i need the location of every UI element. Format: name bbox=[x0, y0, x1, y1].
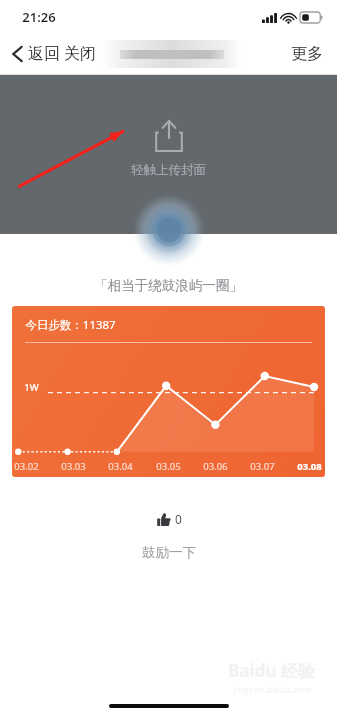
staticText: Baidu 经验 bbox=[228, 659, 315, 682]
button[interactable]: 关闭 bbox=[64, 44, 96, 64]
staticText: 鼓励一下 bbox=[142, 544, 196, 561]
staticText: 0 bbox=[175, 511, 182, 527]
staticText: 03.04 bbox=[108, 460, 133, 473]
staticText: 03.06 bbox=[203, 460, 228, 473]
staticText: 返回 bbox=[28, 44, 60, 64]
staticText: 「相当于绕鼓浪屿一圈」 bbox=[94, 277, 243, 294]
staticText: 今日步数：11387 bbox=[25, 317, 116, 333]
button[interactable]: 轻触上传封面 bbox=[0, 75, 337, 234]
button[interactable]: 更多 bbox=[277, 38, 337, 70]
staticText: 03.05 bbox=[156, 460, 181, 473]
button[interactable]: 鼓励一下 bbox=[143, 504, 195, 534]
staticText: 21:26 bbox=[22, 8, 56, 26]
staticText: 03.08 bbox=[297, 460, 322, 473]
staticText: jingyan.baidu.com bbox=[233, 683, 311, 695]
button[interactable]: 返回 bbox=[0, 38, 68, 70]
staticText: 03.07 bbox=[250, 460, 275, 473]
staticText: 03.02 bbox=[14, 460, 39, 473]
staticText: 1W bbox=[24, 381, 39, 394]
button[interactable]: 今日步数：11387 bbox=[12, 306, 325, 477]
staticText: 轻触上传封面 bbox=[131, 162, 206, 178]
staticText: 03.03 bbox=[61, 460, 86, 473]
